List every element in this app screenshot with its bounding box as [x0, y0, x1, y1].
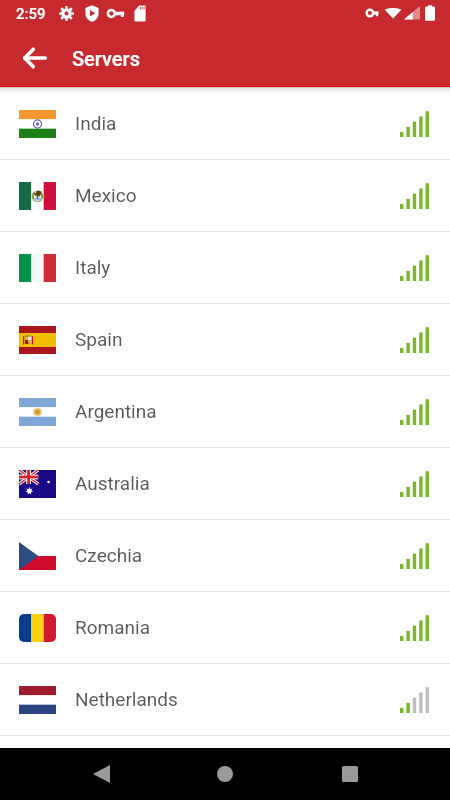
button[interactable]: Home	[201, 750, 249, 798]
button[interactable]: Back	[0, 30, 72, 86]
staticText: Servers	[72, 47, 140, 70]
button[interactable]: Netherlands	[0, 664, 450, 736]
button[interactable]: Back	[77, 750, 125, 798]
staticText: Australia	[75, 472, 150, 494]
button[interactable]: Romania	[0, 592, 450, 664]
staticText: Czechia	[75, 544, 143, 566]
staticText: Mexico	[75, 184, 137, 206]
button[interactable]: Mexico	[0, 160, 450, 232]
button[interactable]: Italy	[0, 232, 450, 304]
staticText: Argentina	[75, 400, 157, 422]
button[interactable]: Australia	[0, 448, 450, 520]
staticText: Netherlands	[75, 688, 178, 710]
button[interactable]: Spain	[0, 304, 450, 376]
button[interactable]: Argentina	[0, 376, 450, 448]
button[interactable]: Recents	[326, 750, 374, 798]
staticText: Romania	[75, 616, 150, 638]
staticText: India	[75, 112, 117, 134]
staticText: 2:59	[16, 5, 46, 23]
staticText: Spain	[75, 328, 123, 350]
button[interactable]: Czechia	[0, 520, 450, 592]
button[interactable]: India	[0, 88, 450, 160]
staticText: Italy	[75, 256, 111, 278]
